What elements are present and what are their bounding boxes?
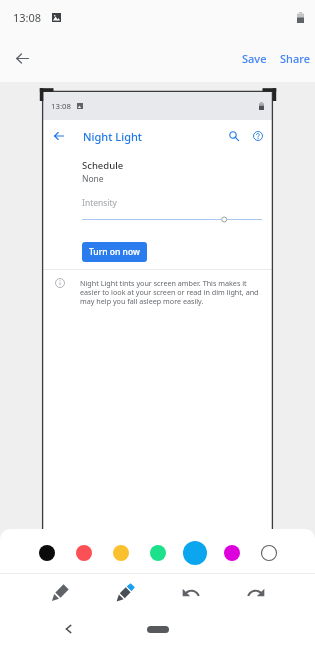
staticText: 13:08 [51,101,71,112]
button[interactable]: Colour [140,535,176,571]
button[interactable]: Turn on now [82,242,147,262]
button[interactable]: Back [57,618,79,640]
button[interactable]: Pen [28,574,93,611]
staticText: Schedule [82,159,124,172]
staticText: Turn on now [89,246,140,258]
button[interactable]: Colour [214,535,250,571]
staticText: Intensity [82,197,117,209]
staticText: Night Light tints your screen amber. Thi… [80,278,267,306]
button[interactable]: Undo [158,574,223,611]
button[interactable]: Home [147,626,169,633]
button[interactable]: Colour [29,535,65,571]
staticText: Save [242,51,267,66]
button[interactable]: Colour [177,535,213,571]
button[interactable]: Highlighter [93,574,158,611]
staticText: Share [280,51,310,66]
button[interactable]: Share [274,43,315,74]
button[interactable]: Save [235,43,274,74]
staticText: None [82,173,104,185]
button[interactable]: Colour [66,535,102,571]
staticText: Night Light [83,129,143,144]
button[interactable]: Back [4,40,40,76]
button[interactable]: Colour [103,535,139,571]
staticText: 13:08 [13,10,42,25]
button[interactable]: Redo [223,574,288,611]
button[interactable]: White colour [251,535,287,571]
